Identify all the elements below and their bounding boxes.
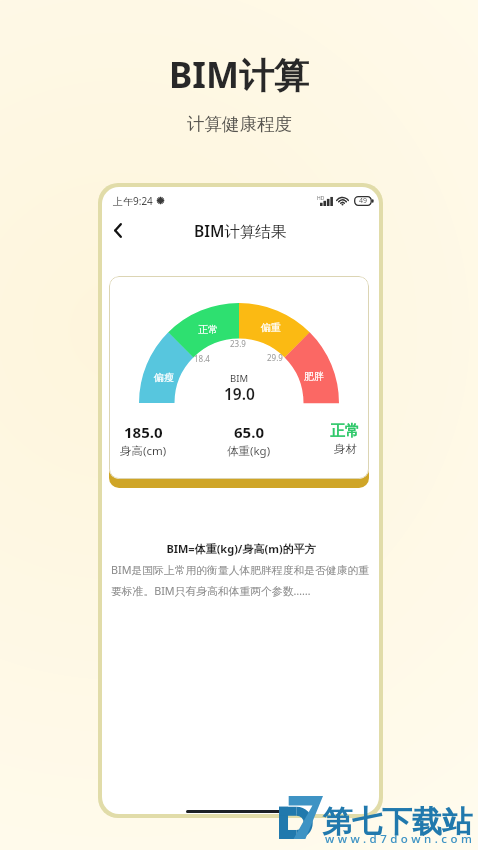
- staticText: BIM计算: [169, 51, 309, 99]
- staticText: 19.0: [224, 383, 255, 404]
- staticText: 65.0: [234, 422, 264, 442]
- staticText: 49: [359, 196, 368, 206]
- staticText: BIM是国际上常用的衡量人体肥胖程度和是否健康的重要标准。BIM只有身高和体重两…: [111, 562, 374, 599]
- staticText: 18.4: [194, 353, 210, 364]
- staticText: 偏重: [261, 321, 281, 334]
- staticText: 29.9: [267, 352, 283, 363]
- staticText: 上午9:24: [113, 194, 153, 208]
- staticText: 正常: [198, 323, 218, 336]
- staticText: 23.9: [230, 338, 246, 349]
- button[interactable]: Back: [102, 214, 134, 246]
- staticText: 第七下载站: [322, 803, 472, 841]
- staticText: 身高(cm): [120, 443, 167, 459]
- staticText: 185.0: [124, 422, 163, 442]
- staticText: BIM=体重(kg)/身高(m)的平方: [166, 541, 316, 556]
- staticText: 正常: [330, 422, 360, 441]
- staticText: HD: [317, 195, 325, 202]
- staticText: BIM: [230, 372, 249, 385]
- staticText: 身材: [334, 442, 357, 456]
- staticText: 偏瘦: [154, 371, 174, 384]
- staticText: 肥胖: [304, 370, 324, 383]
- staticText: www.d7down.com: [325, 831, 476, 847]
- staticText: BIM计算结果: [194, 220, 287, 241]
- staticText: 计算健康程度: [187, 113, 292, 135]
- staticText: 体重(kg): [227, 443, 271, 459]
